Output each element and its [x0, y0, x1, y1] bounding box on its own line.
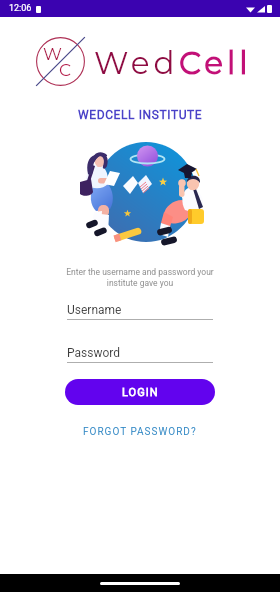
button[interactable]: LOGIN — [65, 379, 215, 405]
staticText: W — [43, 44, 62, 65]
staticText: Password — [67, 346, 121, 360]
staticText: WEDCELL INSTITUTE — [78, 108, 203, 122]
staticText: Enter the username and password your ins… — [65, 267, 215, 288]
staticText: Cell — [179, 44, 252, 82]
staticText: FORGOT PASSWORD? — [83, 426, 197, 438]
button[interactable]: Username — [67, 303, 213, 320]
staticText: 12:06 — [9, 3, 32, 14]
button[interactable]: Password — [67, 346, 213, 363]
staticText: Username — [67, 303, 122, 317]
staticText: C — [59, 60, 72, 81]
button[interactable]: FORGOT PASSWORD? — [77, 423, 203, 441]
staticText: Wed — [94, 44, 179, 82]
staticText: LOGIN — [122, 386, 159, 399]
